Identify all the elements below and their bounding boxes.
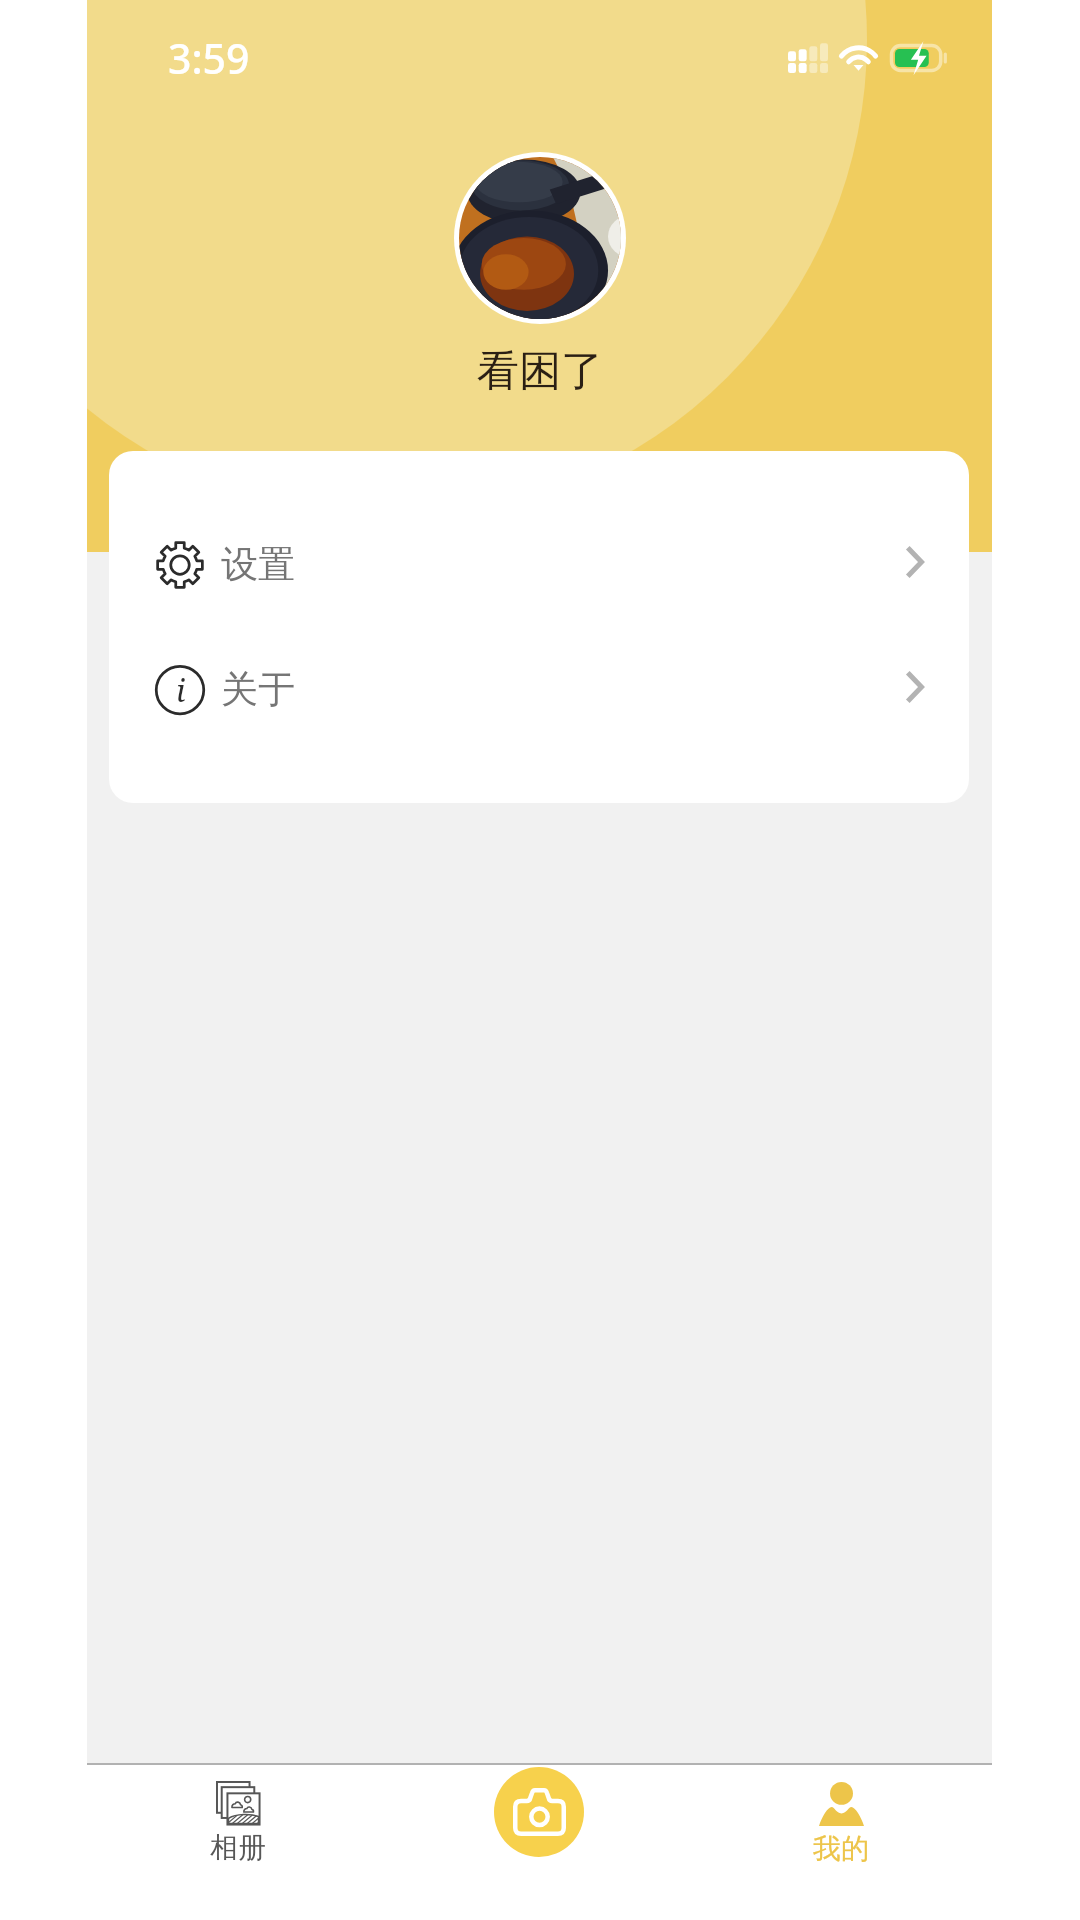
staticText: 关于 <box>221 666 295 713</box>
staticText: 看困了 <box>477 345 603 398</box>
button[interactable]: 相册 <box>87 1765 388 1920</box>
button[interactable]: i <box>109 627 969 752</box>
button[interactable]: Profile photo <box>454 152 626 324</box>
button[interactable]: Camera <box>494 1767 584 1857</box>
button[interactable]: 设置 <box>109 502 969 627</box>
staticText: 设置 <box>221 541 295 588</box>
button[interactable]: 我的 <box>690 1765 992 1920</box>
staticText: 相册 <box>210 1830 266 1865</box>
staticText: i <box>176 669 186 711</box>
staticText: 3:59 <box>168 30 250 86</box>
staticText: 我的 <box>813 1831 869 1866</box>
